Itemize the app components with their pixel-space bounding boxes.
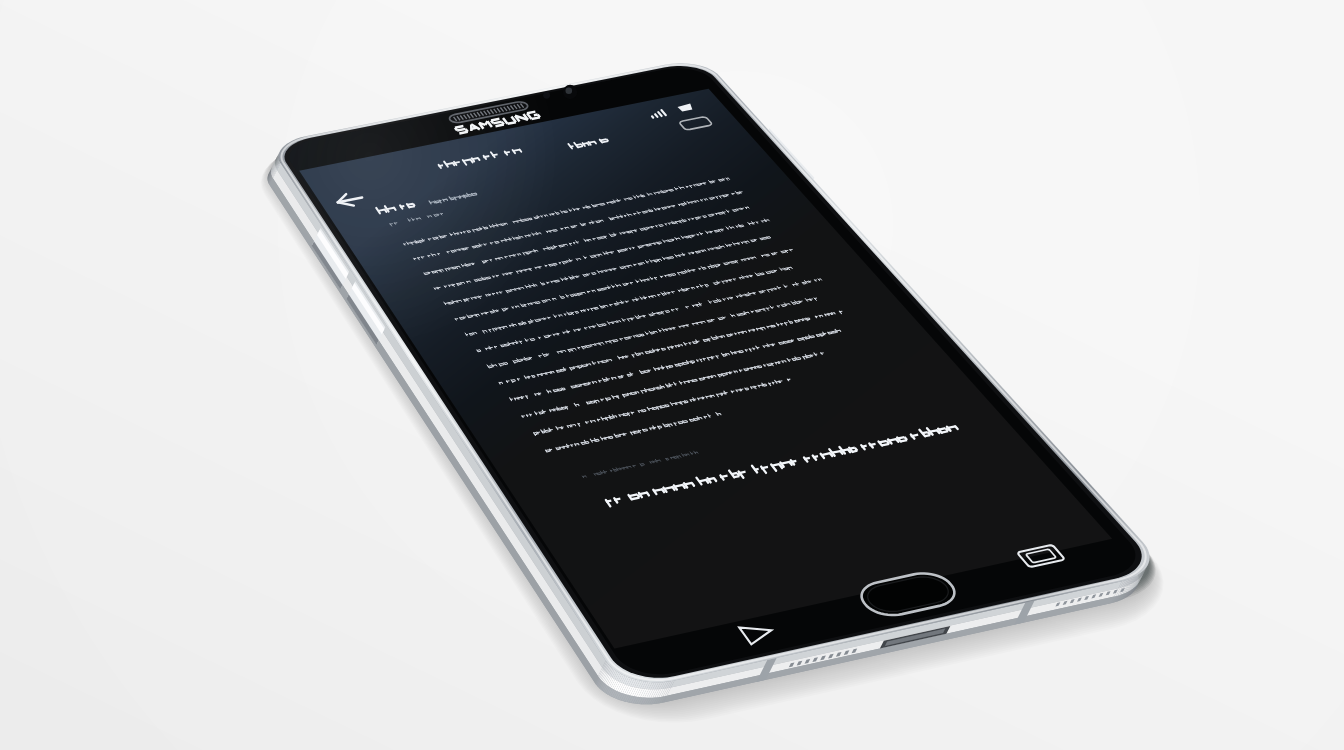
button[interactable]: Back bbox=[724, 606, 788, 662]
button[interactable]: Home bbox=[846, 562, 968, 630]
button[interactable]: Galaxy S6 note screen bbox=[260, 60, 1160, 700]
button[interactable]: Notifications bbox=[636, 90, 732, 160]
button[interactable]: Back bbox=[306, 168, 382, 230]
button[interactable]: Recent apps bbox=[1006, 532, 1076, 582]
